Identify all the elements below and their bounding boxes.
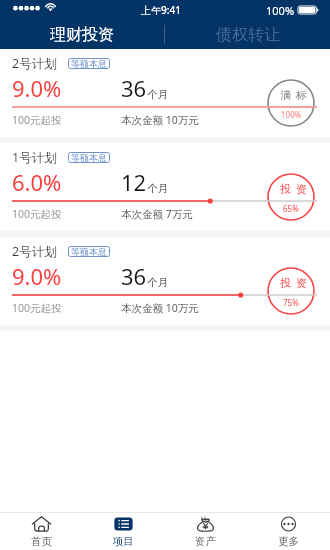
staticText: 2号计划 [12, 243, 57, 260]
button[interactable]: 投资 [267, 173, 315, 221]
button[interactable]: 理财投资 [0, 20, 164, 49]
staticText: 100% [281, 109, 302, 120]
button[interactable]: 更多 [247, 513, 330, 550]
button[interactable]: 满标 [267, 79, 315, 127]
staticText: 100% [266, 3, 295, 18]
staticText: 项目 [113, 535, 134, 548]
staticText: 100元起投 [12, 301, 62, 315]
staticText: 满标 [278, 88, 309, 102]
staticText: 100元起投 [12, 113, 62, 127]
button[interactable]: 2号计划 [0, 237, 330, 325]
staticText: 36 [121, 73, 147, 103]
button[interactable]: 资产 [164, 513, 247, 550]
staticText: 6.0% [12, 167, 62, 197]
staticText: 等额本息 [71, 246, 107, 257]
staticText: 债权转让 [216, 25, 280, 45]
staticText: 首页 [31, 535, 52, 548]
button[interactable]: 投资 [267, 267, 315, 315]
staticText: 1号计划 [12, 149, 57, 166]
staticText: 资产 [195, 535, 216, 548]
staticText: 本次金额 7万元 [121, 207, 193, 221]
button[interactable]: 1号计划 [0, 143, 330, 231]
staticText: 更多 [278, 535, 299, 548]
staticText: 理财投资 [50, 25, 114, 45]
staticText: 2号计划 [12, 55, 57, 72]
staticText: 9.0% [12, 73, 62, 103]
staticText: 75% [283, 297, 299, 308]
button[interactable]: 首页 [0, 513, 82, 550]
staticText: 12 [121, 167, 147, 197]
staticText: 投资 [278, 182, 309, 196]
button[interactable]: 2号计划 [0, 49, 330, 137]
staticText: 等额本息 [71, 152, 107, 163]
button[interactable]: 项目 [82, 513, 164, 550]
staticText: 个月 [147, 276, 168, 289]
staticText: 等额本息 [71, 58, 107, 69]
staticText: 个月 [147, 88, 168, 101]
button[interactable]: 债权转让 [165, 20, 330, 49]
staticText: 上午9:41 [141, 3, 181, 17]
staticText: 36 [121, 261, 147, 291]
staticText: 65% [283, 203, 299, 214]
staticText: 投资 [278, 276, 309, 290]
staticText: 个月 [147, 182, 168, 195]
staticText: 9.0% [12, 261, 62, 291]
staticText: 本次金额 10万元 [121, 301, 199, 315]
staticText: 本次金额 10万元 [121, 113, 199, 127]
staticText: 100元起投 [12, 207, 62, 221]
